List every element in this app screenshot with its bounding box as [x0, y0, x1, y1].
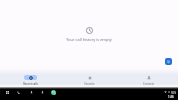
- staticText: Your call history is empty: [66, 37, 112, 42]
- button[interactable]: Open dial pad: [165, 58, 172, 65]
- staticText: 1:36: [168, 95, 174, 99]
- staticText: 50%: [171, 91, 177, 95]
- staticText: Recent calls: [23, 82, 38, 86]
- button[interactable]: Recent calls: [0, 69, 60, 86]
- button[interactable]: Contacts: [119, 69, 178, 86]
- staticText: Contacts: [143, 82, 154, 86]
- button[interactable]: Favorite: [60, 69, 119, 86]
- staticText: Favorite: [84, 82, 95, 86]
